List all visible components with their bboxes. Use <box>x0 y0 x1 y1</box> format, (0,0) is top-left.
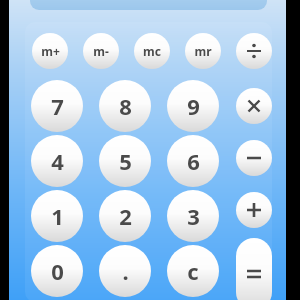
button[interactable]: 5 <box>99 135 151 187</box>
staticText: 3 <box>187 201 200 231</box>
button[interactable]: mc <box>134 33 170 69</box>
button[interactable]: 3 <box>167 190 219 242</box>
button[interactable]: Subtract <box>236 140 272 176</box>
button[interactable]: 0 <box>31 245 83 297</box>
button[interactable]: . <box>99 245 151 297</box>
button[interactable]: m+ <box>32 33 68 69</box>
staticText: 9 <box>187 91 200 121</box>
button[interactable]: Add <box>236 192 272 228</box>
button[interactable]: Divide <box>236 33 272 69</box>
button[interactable]: Multiply <box>236 88 272 124</box>
staticText: 1 <box>51 201 64 231</box>
button[interactable]: 1 <box>31 190 83 242</box>
button[interactable]: Equals <box>236 238 272 300</box>
staticText: m- <box>93 43 109 59</box>
staticText: 7 <box>51 91 64 121</box>
staticText: mr <box>194 43 212 59</box>
button[interactable]: 2 <box>99 190 151 242</box>
button[interactable]: 9 <box>167 80 219 132</box>
button[interactable]: mr <box>185 33 221 69</box>
staticText: 4 <box>51 146 64 176</box>
button[interactable]: c <box>167 245 219 297</box>
staticText: m+ <box>41 43 60 59</box>
button[interactable]: 4 <box>31 135 83 187</box>
staticText: 5 <box>119 146 132 176</box>
staticText: 8 <box>119 91 132 121</box>
staticText: 2 <box>119 201 132 231</box>
button[interactable]: m- <box>83 33 119 69</box>
button[interactable] <box>30 0 267 10</box>
button[interactable]: 8 <box>99 80 151 132</box>
button[interactable]: 7 <box>31 80 83 132</box>
button[interactable]: 6 <box>167 135 219 187</box>
staticText: 0 <box>51 256 64 286</box>
staticText: c <box>187 256 199 286</box>
staticText: 6 <box>187 146 200 176</box>
staticText: . <box>122 256 129 286</box>
staticText: mc <box>143 43 161 59</box>
